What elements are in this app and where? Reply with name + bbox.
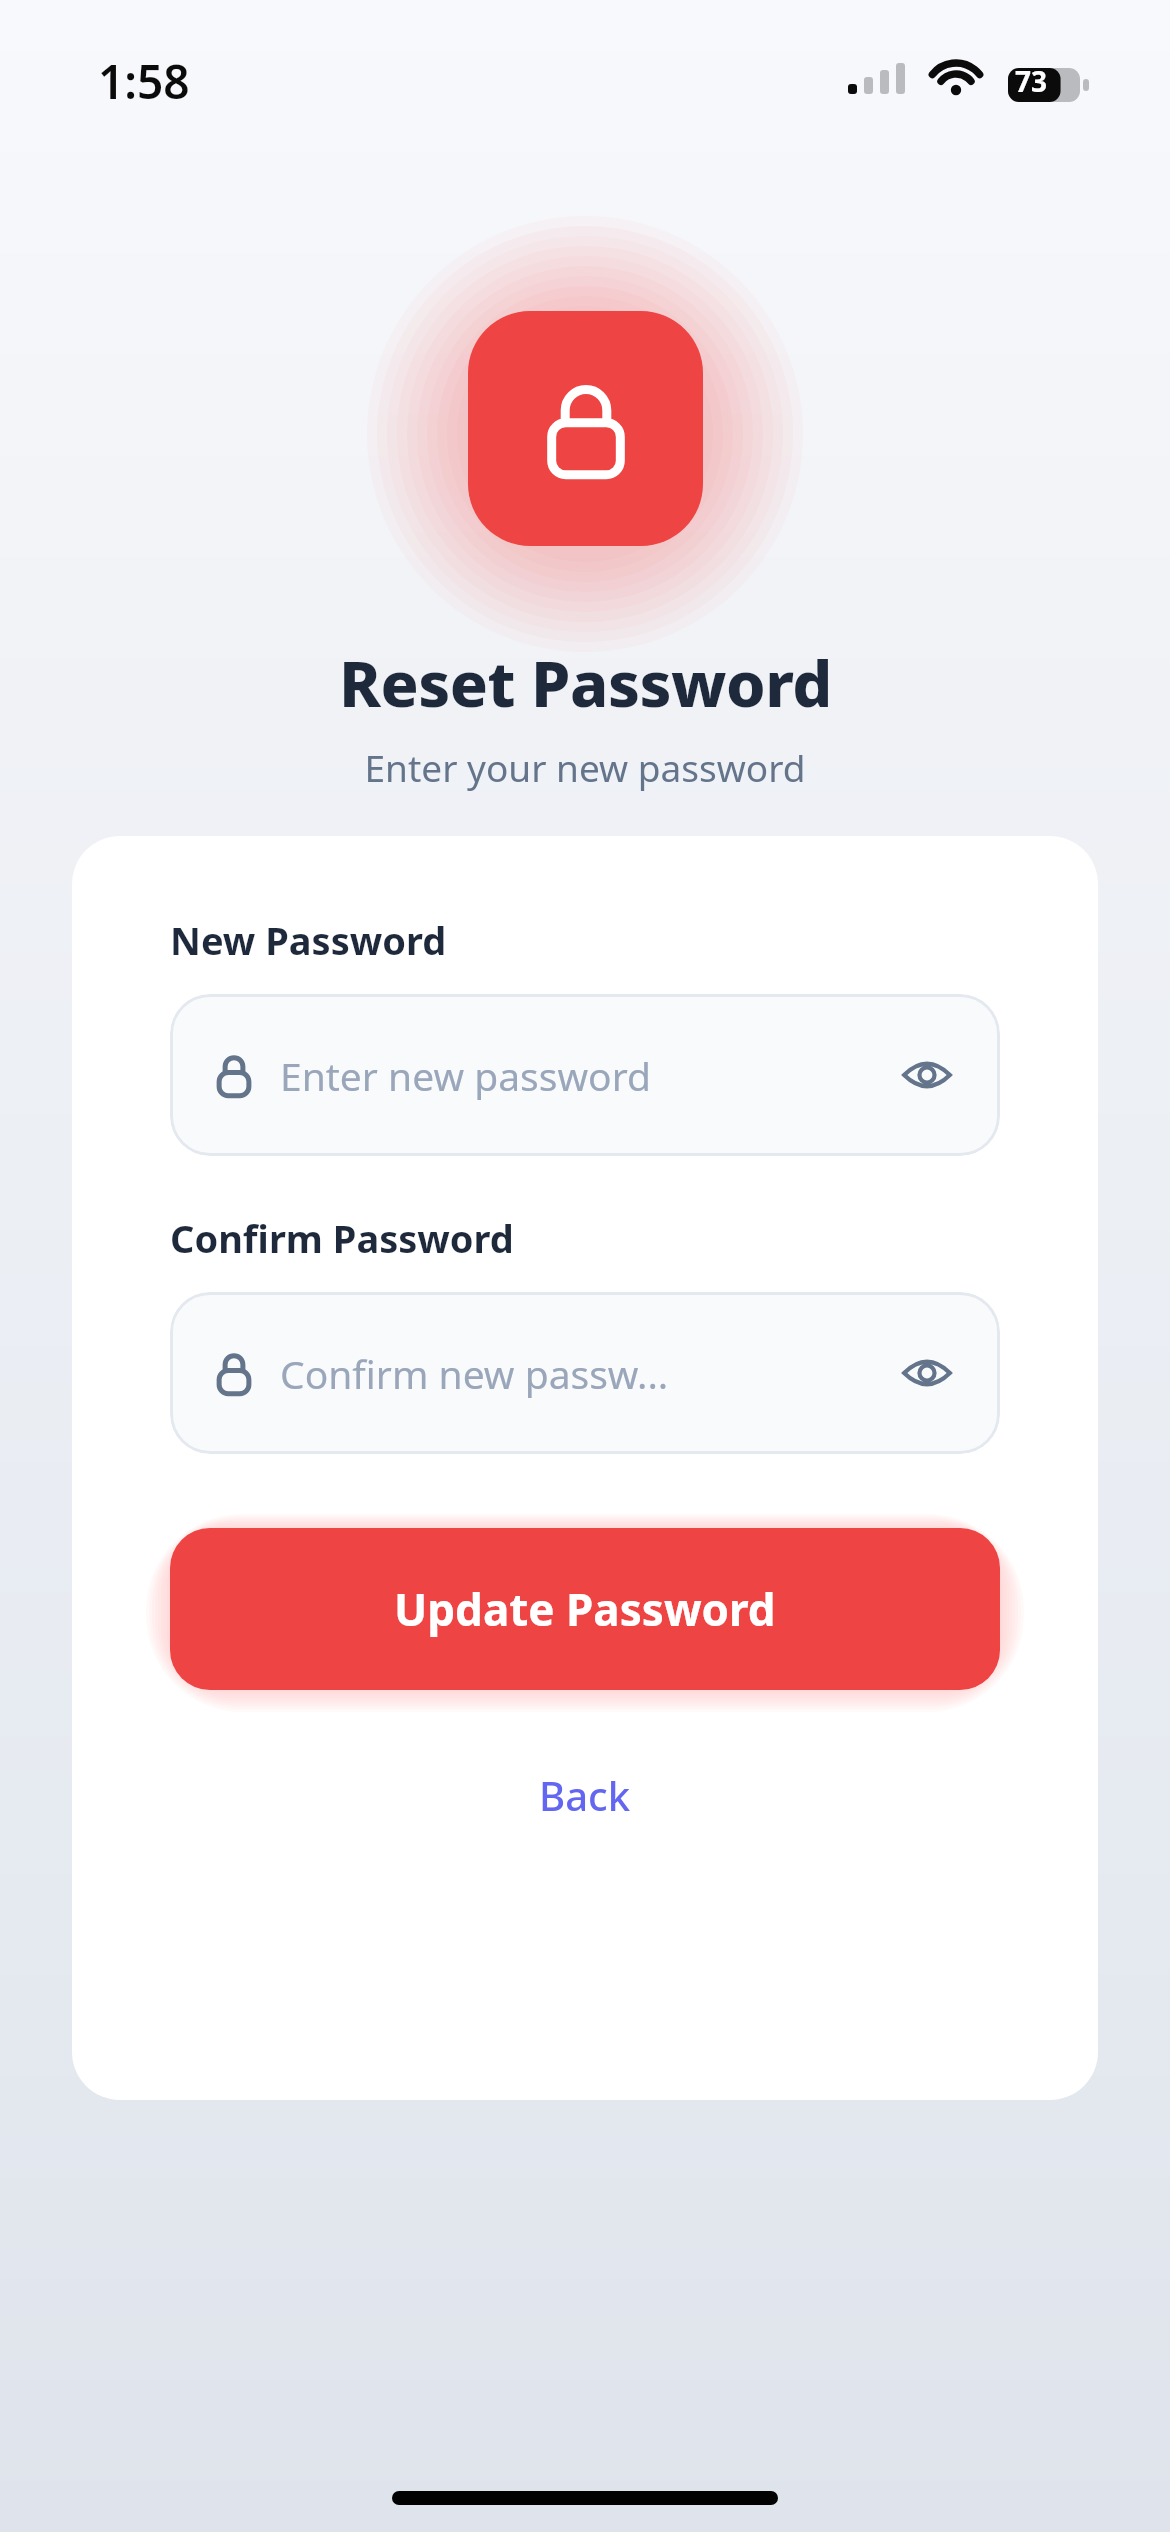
button[interactable]: Show password [894,1340,960,1406]
button[interactable]: Back [499,1754,671,1836]
staticText: Update Password [394,1579,776,1639]
staticText: Enter new password [280,1049,652,1102]
button[interactable]: Enter new password [170,994,1000,1156]
button[interactable]: Update Password [170,1528,1000,1690]
staticText: Reset Password [339,640,832,726]
staticText: 73 [1015,62,1048,100]
staticText: Back [539,1768,631,1822]
button[interactable]: Confirm new passw... [170,1292,1000,1454]
staticText: New Password [170,914,447,966]
staticText: Confirm new passw... [280,1347,669,1400]
button[interactable]: Show password [894,1042,960,1108]
staticText: Enter your new password [364,742,806,792]
staticText: Confirm Password [170,1212,514,1264]
staticText: 1:58 [98,50,190,113]
